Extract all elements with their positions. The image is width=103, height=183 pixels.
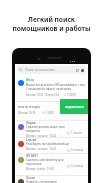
staticText: HR BEST xyxy=(26,154,38,158)
staticText: помощников и работы xyxy=(12,24,91,33)
staticText: Сделать дизайн-макет для xyxy=(26,125,65,129)
staticText: Легкий поиск xyxy=(28,15,75,24)
button[interactable]: hh.ru xyxy=(15,78,88,112)
staticText: 3 отклика xyxy=(71,148,84,152)
staticText: Сергей xyxy=(26,138,37,142)
staticText: Разобрать по коробкам вещи xyxy=(26,142,69,146)
staticText: Ищем энергичного HR-менеджера, спец xyxy=(26,83,85,87)
staticText: Москва 19:30 xyxy=(18,111,36,115)
staticText: персонала xyxy=(26,162,42,166)
button[interactable]: Ольга xyxy=(15,176,88,183)
staticText: Лидия xyxy=(26,121,36,125)
button[interactable]: Профиль xyxy=(81,69,84,72)
staticText: анкеты сегодня xyxy=(18,105,40,109)
button[interactable]: Лидия xyxy=(15,121,88,137)
button[interactable]: Поиск xyxy=(17,66,86,74)
staticText: 2 отклика xyxy=(71,164,84,168)
staticText: Москва · сегодня · 14:22 xyxy=(26,147,57,151)
other: Фильтр xyxy=(76,69,79,72)
staticText: hh.ru xyxy=(26,78,35,82)
staticText: Москва 10:30 · Вчера 18:4 xyxy=(26,93,60,97)
button[interactable]: HR BEST xyxy=(15,154,88,170)
button[interactable]: Сергей xyxy=(15,138,88,154)
staticText: 1 200 ₽ xyxy=(45,111,54,115)
staticText: лендинга xyxy=(26,129,40,133)
button[interactable]: подписаться xyxy=(60,99,88,114)
staticText: Москва · сегодня · 15:02 xyxy=(26,134,57,137)
staticText: Ольга xyxy=(26,176,35,180)
staticText: 1 отклик xyxy=(71,131,82,135)
staticText: подписаться xyxy=(65,105,84,109)
staticText: Помочь с переездом xyxy=(26,180,57,183)
staticText: Сделать сайт-визитку для xyxy=(26,158,64,162)
staticText: Москва · вчера · 19:40 xyxy=(26,167,54,170)
staticText: Специалиста офиса, категория xyxy=(26,87,71,91)
staticText: 3 000 ₽ xyxy=(67,93,76,97)
staticText: Поиск по вакансиям xyxy=(25,68,55,72)
